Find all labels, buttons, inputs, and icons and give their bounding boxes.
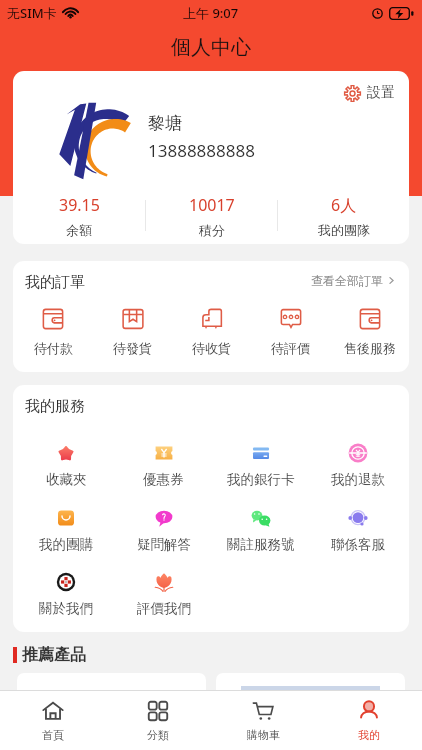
- staticText: 黎塘: [148, 113, 182, 134]
- button[interactable]: 查看全部訂單: [305, 269, 403, 292]
- staticText: 6人: [331, 194, 357, 216]
- button[interactable]: 首頁: [0, 691, 105, 750]
- button[interactable]: 39.15: [13, 187, 145, 244]
- staticText: 我的團購: [39, 536, 93, 553]
- staticText: 疑問解答: [137, 536, 191, 553]
- staticText: 首頁: [42, 728, 64, 742]
- staticText: 查看全部訂單: [311, 273, 383, 288]
- button[interactable]: 設置: [338, 78, 401, 108]
- button[interactable]: 待收貨: [172, 306, 251, 356]
- staticText: 39.15: [59, 194, 100, 216]
- button[interactable]: 待發貨: [93, 306, 172, 356]
- staticText: 我的訂單: [25, 273, 85, 292]
- staticText: 個人中心: [171, 35, 251, 60]
- button[interactable]: 聯係客服: [309, 508, 406, 553]
- staticText: 我的退款: [331, 471, 385, 488]
- staticText: 我的銀行卡: [227, 471, 295, 488]
- staticText: 待評價: [271, 340, 310, 356]
- staticText: 推薦產品: [22, 645, 86, 665]
- button[interactable]: 10017: [146, 187, 277, 244]
- staticText: 評價我們: [137, 600, 191, 617]
- staticText: 余額: [66, 222, 92, 238]
- staticText: 收藏夾: [46, 471, 87, 488]
- button[interactable]: 我的退款: [309, 443, 406, 488]
- button[interactable]: 關於我們: [17, 572, 115, 617]
- button[interactable]: 售後服務: [330, 306, 409, 356]
- button[interactable]: 我的銀行卡: [212, 443, 309, 488]
- button[interactable]: 待評價: [251, 306, 330, 356]
- staticText: 10017: [189, 194, 235, 216]
- button[interactable]: 待付款: [13, 306, 93, 356]
- staticText: 關註服務號: [227, 536, 295, 553]
- staticText: 我的團隊: [318, 222, 370, 238]
- staticText: 待收貨: [192, 340, 231, 356]
- staticText: 售後服務: [344, 340, 396, 356]
- staticText: 積分: [199, 222, 225, 238]
- button[interactable]: 我的團購: [17, 508, 115, 553]
- button[interactable]: 收藏夾: [17, 443, 115, 488]
- button[interactable]: 優惠券: [115, 443, 212, 488]
- staticText: 13888888888: [148, 139, 255, 162]
- button[interactable]: 購物車: [210, 691, 316, 750]
- staticText: 我的服務: [25, 397, 85, 416]
- staticText: 分類: [147, 728, 169, 742]
- button[interactable]: 分類: [105, 691, 210, 750]
- staticText: 待發貨: [113, 340, 152, 356]
- staticText: 上午 9:07: [183, 4, 239, 22]
- button[interactable]: 6人: [278, 187, 409, 244]
- staticText: 設置: [367, 84, 395, 102]
- staticText: 待付款: [34, 340, 73, 356]
- staticText: 關於我們: [39, 600, 93, 617]
- button[interactable]: 關註服務號: [212, 508, 309, 553]
- button[interactable]: 我的: [316, 691, 422, 750]
- staticText: 我的: [358, 728, 380, 742]
- staticText: 購物車: [247, 728, 280, 742]
- staticText: 无SIM卡: [7, 4, 57, 22]
- staticText: 聯係客服: [331, 536, 385, 553]
- staticText: 優惠券: [143, 471, 184, 488]
- button[interactable]: 評價我們: [115, 572, 212, 617]
- button[interactable]: 疑問解答: [115, 508, 212, 553]
